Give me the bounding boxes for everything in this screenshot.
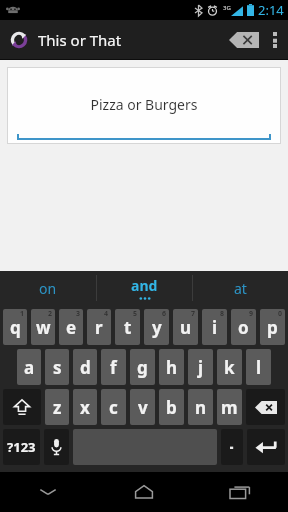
button[interactable]: Shift: [3, 389, 41, 425]
button[interactable]: y: [144, 309, 169, 345]
button[interactable]: v: [130, 389, 155, 425]
button[interactable]: Voice input: [44, 429, 69, 465]
staticText: w: [36, 316, 51, 339]
staticText: 0: [278, 309, 283, 319]
staticText: on: [39, 279, 57, 298]
button[interactable]: k: [217, 349, 242, 385]
staticText: u: [180, 316, 192, 339]
button[interactable]: o: [231, 309, 256, 345]
staticText: This or That: [38, 30, 122, 50]
staticText: i: [212, 316, 218, 339]
button[interactable]: u: [173, 309, 198, 345]
other: App icon: [8, 29, 30, 51]
staticText: 1: [20, 309, 25, 319]
staticText: l: [256, 356, 262, 379]
button[interactable]: [221, 429, 243, 465]
button[interactable]: Home: [96, 472, 192, 512]
staticText: n: [195, 396, 207, 419]
staticText: 2: [48, 309, 53, 319]
button[interactable]: and: [97, 271, 192, 305]
button[interactable]: Clear: [226, 20, 262, 60]
button[interactable]: n: [188, 389, 213, 425]
staticText: y: [152, 316, 162, 339]
staticText: 5: [133, 309, 138, 319]
button[interactable]: at: [193, 271, 288, 305]
button[interactable]: m: [217, 389, 242, 425]
staticText: 3: [76, 309, 81, 319]
button[interactable]: h: [159, 349, 184, 385]
button[interactable]: s: [45, 349, 69, 385]
staticText: e: [66, 316, 77, 339]
button[interactable]: j: [188, 349, 213, 385]
button[interactable]: c: [101, 389, 126, 425]
staticText: ?123: [7, 438, 36, 456]
button[interactable]: t: [115, 309, 140, 345]
button[interactable]: Backspace: [246, 389, 285, 425]
button[interactable]: l: [246, 349, 271, 385]
staticText: m: [221, 396, 238, 419]
staticText: x: [80, 396, 90, 419]
staticText: and: [131, 276, 158, 295]
staticText: b: [166, 396, 177, 419]
staticText: z: [53, 396, 62, 419]
button[interactable]: r: [87, 309, 111, 345]
button[interactable]: More options: [262, 20, 288, 60]
staticText: c: [109, 396, 118, 419]
button[interactable]: a: [17, 349, 41, 385]
staticText: d: [80, 356, 91, 379]
button[interactable]: q: [3, 309, 27, 345]
staticText: at: [234, 279, 247, 298]
staticText: o: [238, 316, 249, 339]
staticText: v: [138, 396, 148, 419]
button[interactable]: Recent apps: [192, 472, 288, 512]
button[interactable]: ?123: [3, 429, 40, 465]
button[interactable]: z: [45, 389, 69, 425]
button[interactable]: Enter: [247, 429, 285, 465]
staticText: q: [10, 316, 21, 339]
button[interactable]: w: [31, 309, 55, 345]
staticText: 7: [191, 309, 196, 319]
staticText: g: [137, 356, 148, 379]
button[interactable]: Hide keyboard: [0, 472, 96, 512]
staticText: a: [24, 356, 35, 379]
button[interactable]: e: [59, 309, 83, 345]
staticText: 3G: [223, 4, 231, 12]
staticText: Pizza or Burgers: [8, 95, 280, 114]
staticText: 6: [162, 309, 167, 319]
staticText: 2:14: [258, 1, 284, 19]
staticText: f: [110, 356, 117, 379]
button[interactable]: on: [0, 271, 96, 305]
staticText: 4: [104, 309, 109, 319]
button[interactable]: x: [73, 389, 97, 425]
staticText: s: [53, 356, 62, 379]
staticText: k: [224, 356, 235, 379]
button[interactable]: i: [202, 309, 227, 345]
staticText: j: [198, 356, 204, 379]
button[interactable]: Pizza or Burgers: [8, 68, 280, 143]
button[interactable]: g: [130, 349, 155, 385]
button[interactable]: b: [159, 389, 184, 425]
staticText: p: [267, 316, 278, 339]
staticText: t: [124, 316, 132, 339]
staticText: 9: [249, 309, 254, 319]
button[interactable]: d: [73, 349, 97, 385]
button[interactable]: p: [260, 309, 285, 345]
staticText: r: [95, 316, 103, 339]
button[interactable]: f: [101, 349, 126, 385]
staticText: 8: [220, 309, 225, 319]
staticText: h: [166, 356, 178, 379]
